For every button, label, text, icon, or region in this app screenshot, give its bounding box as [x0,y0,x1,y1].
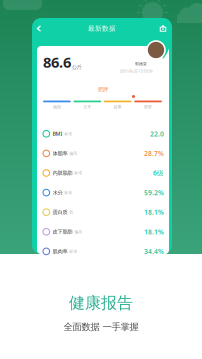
staticText: 公斤 [72,64,82,71]
staticText: 皮下脂肪 [53,228,73,235]
staticText: 86.6 [43,52,71,72]
button[interactable]: 蛋白质 [37,202,169,222]
staticText: 正常 [83,104,91,109]
staticText: 全面数据 一手掌握 [63,321,138,333]
staticText: 偏高 [74,229,82,234]
staticText: 肥胖 [144,104,152,109]
staticText: 郭德堂 [135,61,147,66]
staticText: 低 [69,210,73,215]
staticText: 18.1% [144,227,164,236]
staticText: 22.0 [150,129,164,138]
staticText: 内脏脂肪 [53,170,73,176]
staticText: 标准 [64,190,72,195]
button[interactable]: BMI [37,124,169,144]
staticText: 标准 [69,249,77,254]
button[interactable]: 体脂率 [37,144,169,163]
staticText: 6级 [153,169,164,177]
staticText: 肌肉率 [53,248,68,255]
button[interactable]: Share [156,18,170,39]
staticText: 体脂率 [53,150,68,157]
staticText: 超重 [114,104,122,109]
button[interactable]: 肌肉率 [37,242,169,261]
staticText: 健康报告 [69,293,133,313]
button[interactable]: 皮下脂肪 [37,222,169,242]
staticText: 蛋白质 [53,209,68,215]
staticText: 34.4% [144,247,164,256]
staticText: 2021-06-25 13:59:56 [119,68,152,74]
staticText: 水分 [53,189,63,196]
staticText: 标准 [64,131,72,136]
staticText: 最新数据 [88,24,116,33]
button[interactable]: 内脏脂肪 [37,163,169,183]
staticText: 18.1% [144,208,164,217]
staticText: 偏高 [69,151,77,156]
staticText: 偏瘦 [53,104,61,109]
button[interactable]: 水分 [37,183,169,202]
staticText: 59.2% [144,188,164,197]
staticText: 标准 [74,170,82,175]
staticText: BMI [53,130,63,137]
button[interactable]: Back [32,18,46,39]
staticText: 28.7% [144,149,164,158]
staticText: 肥胖 [98,86,108,93]
